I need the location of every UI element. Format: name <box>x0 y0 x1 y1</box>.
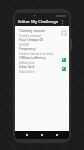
button[interactable]: Your Unique ID <box>15 37 69 46</box>
button[interactable]: Recents <box>54 132 60 138</box>
staticText: Data Grid on <box>19 70 35 73</box>
button[interactable]: More options <box>60 19 67 26</box>
button[interactable]: Back <box>24 132 30 138</box>
button[interactable]: Tracking session <box>15 28 69 37</box>
button[interactable]: Frequency <box>15 46 69 55</box>
button[interactable]: Toggle tracking session <box>61 30 66 35</box>
staticText: ⋮⋮ <box>60 19 67 26</box>
staticText: Tracking interval in seconds <box>19 52 53 55</box>
other: Notification <box>33 14 36 17</box>
staticText: Data Grid <box>19 64 35 69</box>
staticText: Editor My Challenge <box>18 19 59 25</box>
staticText: Tracking session <box>19 28 46 33</box>
button[interactable]: Home <box>39 132 45 138</box>
staticText: Your Unique ID <box>19 37 44 42</box>
staticText: b120001 <box>19 43 30 46</box>
staticText: Frequency <box>19 46 36 51</box>
staticText: Offline buffering <box>19 55 46 60</box>
staticText: Track by computer <box>19 34 42 37</box>
button[interactable]: Status on <box>61 66 66 71</box>
button[interactable]: Data Grid <box>15 64 69 73</box>
button[interactable]: Status on <box>61 57 66 62</box>
button[interactable]: Offline buffering <box>15 55 69 64</box>
staticText: Buffering on <box>19 61 35 64</box>
